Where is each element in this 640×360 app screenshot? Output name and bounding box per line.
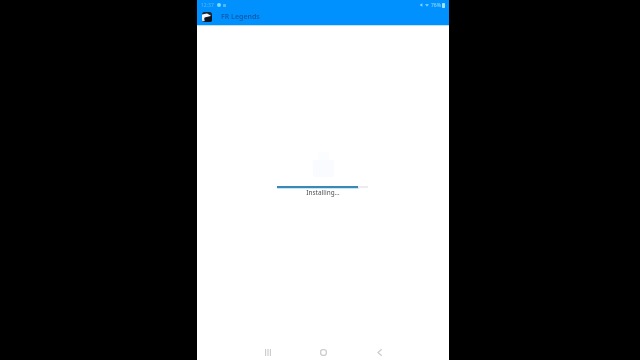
staticText: 12:37 bbox=[201, 2, 214, 9]
button[interactable]: Back bbox=[371, 344, 387, 360]
staticText: 76% bbox=[431, 2, 441, 9]
staticText: FR Legends bbox=[221, 12, 260, 22]
button[interactable]: Recents bbox=[260, 344, 276, 360]
button[interactable]: FR Legends bbox=[202, 9, 449, 24]
staticText: Installing… bbox=[306, 188, 340, 197]
button[interactable]: Home bbox=[315, 344, 331, 360]
